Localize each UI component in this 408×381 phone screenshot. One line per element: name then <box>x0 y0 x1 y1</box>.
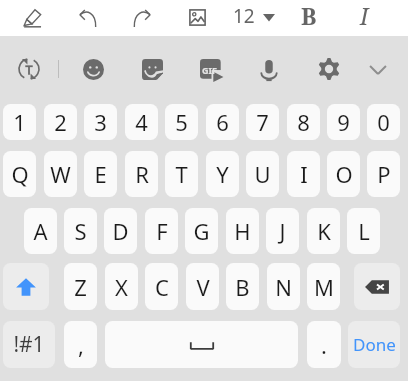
button[interactable]: Draw <box>10 0 54 35</box>
button[interactable]: Done <box>348 321 400 368</box>
button[interactable]: Stickers <box>128 49 176 89</box>
button[interactable]: Settings <box>305 49 353 89</box>
staticText: 7 <box>256 107 269 137</box>
button[interactable]: H <box>226 208 259 254</box>
staticText: 1 <box>13 107 26 137</box>
button[interactable]: M <box>307 263 340 310</box>
staticText: C <box>155 272 169 302</box>
staticText: B <box>235 272 250 302</box>
button[interactable]: Voice input <box>245 50 293 90</box>
staticText: GIF <box>202 64 217 76</box>
staticText: A <box>33 216 48 246</box>
staticText: D <box>112 216 129 246</box>
button[interactable]: P <box>367 151 400 197</box>
button[interactable]: N <box>267 263 300 310</box>
staticText: 6 <box>216 107 229 137</box>
button[interactable]: Redo <box>120 0 164 35</box>
button[interactable]: 5 <box>165 104 198 140</box>
staticText: 2 <box>54 107 67 137</box>
staticText: Done <box>353 333 396 356</box>
staticText: , <box>78 330 84 360</box>
staticText: . <box>321 330 327 360</box>
staticText: 12 <box>233 3 255 29</box>
button[interactable]: R <box>125 151 158 197</box>
staticText: Y <box>216 159 229 189</box>
staticText: E <box>94 159 107 189</box>
staticText: J <box>279 216 286 246</box>
staticText: S <box>74 216 87 246</box>
staticText: 5 <box>175 107 188 137</box>
button[interactable]: B <box>226 263 259 310</box>
button[interactable]: Z <box>64 263 97 310</box>
button[interactable]: Q <box>3 151 36 197</box>
button[interactable]: 12 <box>224 0 282 34</box>
staticText: 4 <box>135 107 148 137</box>
staticText: 0 <box>377 107 390 137</box>
button[interactable]: B <box>286 0 332 33</box>
button[interactable]: , <box>64 321 97 368</box>
button[interactable]: Undo <box>65 0 109 35</box>
staticText: I <box>360 0 369 31</box>
staticText: B <box>301 0 317 31</box>
staticText: 3 <box>94 107 107 137</box>
button[interactable]: Shift <box>3 263 49 310</box>
button[interactable]: Insert image <box>175 0 219 35</box>
button[interactable]: 2 <box>44 104 77 140</box>
staticText: N <box>275 272 292 302</box>
button[interactable]: O <box>327 151 360 197</box>
staticText: U <box>254 159 271 189</box>
button[interactable]: J <box>266 208 299 254</box>
button[interactable]: 7 <box>246 104 279 140</box>
staticText: !#1 <box>13 330 45 359</box>
button[interactable]: I <box>287 151 320 197</box>
staticText: P <box>377 159 391 189</box>
button[interactable]: T <box>165 151 198 197</box>
staticText: 9 <box>337 107 350 137</box>
button[interactable]: F <box>145 208 178 254</box>
button[interactable]: 3 <box>84 104 117 140</box>
staticText: F <box>156 216 168 246</box>
button[interactable]: . <box>307 321 341 368</box>
staticText: K <box>317 216 331 246</box>
button[interactable]: Emoji <box>69 49 117 89</box>
staticText: 8 <box>297 107 310 137</box>
button[interactable]: L <box>347 208 380 254</box>
button[interactable]: 0 <box>367 104 400 140</box>
button[interactable]: W <box>44 151 77 197</box>
button[interactable]: GIF <box>187 50 235 90</box>
staticText: R <box>135 159 149 189</box>
button[interactable]: 6 <box>206 104 239 140</box>
button[interactable]: 1 <box>3 104 36 140</box>
button[interactable]: Collapse keyboard <box>356 50 400 90</box>
button[interactable]: !#1 <box>3 321 55 368</box>
button[interactable]: 8 <box>287 104 320 140</box>
staticText: M <box>314 272 334 302</box>
button[interactable]: D <box>104 208 137 254</box>
button[interactable]: Backspace <box>354 263 400 310</box>
button[interactable]: K <box>307 208 340 254</box>
button[interactable]: E <box>84 151 117 197</box>
button[interactable]: Space <box>105 321 298 368</box>
staticText: L <box>358 216 370 246</box>
staticText: T <box>175 159 188 189</box>
staticText: H <box>234 216 251 246</box>
button[interactable]: A <box>24 208 57 254</box>
staticText: Q <box>11 159 29 189</box>
button[interactable]: V <box>186 263 219 310</box>
button[interactable]: G <box>185 208 218 254</box>
button[interactable]: U <box>246 151 279 197</box>
staticText: X <box>115 272 128 302</box>
staticText: V <box>196 272 210 302</box>
staticText: Z <box>74 272 87 302</box>
button[interactable]: Y <box>206 151 239 197</box>
button[interactable]: 9 <box>327 104 360 140</box>
staticText: I <box>300 159 308 189</box>
button[interactable]: C <box>145 263 178 310</box>
staticText: W <box>50 159 71 189</box>
button[interactable]: I <box>341 0 387 33</box>
button[interactable]: 4 <box>125 104 158 140</box>
button[interactable]: Translate <box>5 49 53 89</box>
button[interactable]: X <box>105 263 138 310</box>
staticText: G <box>193 216 210 246</box>
button[interactable]: S <box>64 208 97 254</box>
